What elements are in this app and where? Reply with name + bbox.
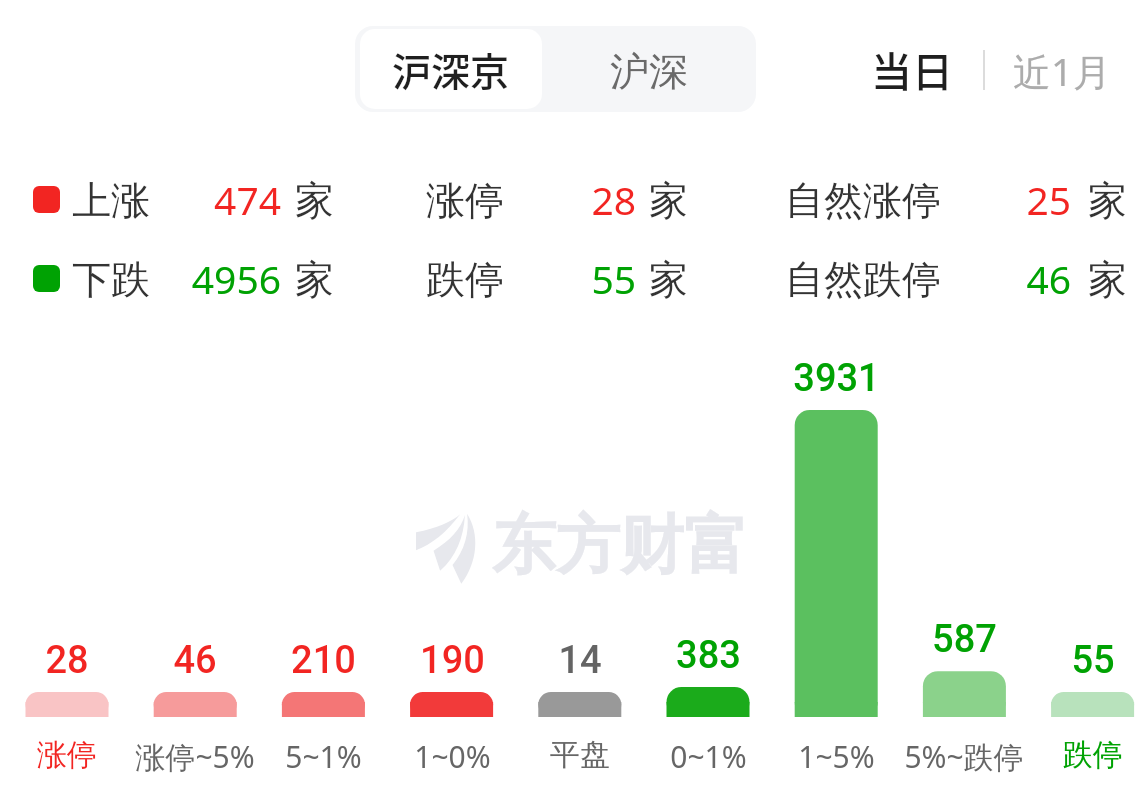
staticText: 家 — [295, 255, 334, 304]
staticText: 下跌 — [72, 255, 150, 304]
staticText: 3931 — [793, 356, 880, 401]
staticText: 383 — [676, 633, 741, 678]
staticText: 自然涨停 — [785, 176, 941, 225]
staticText: 210 — [291, 638, 356, 683]
button[interactable]: 沪深 — [542, 28, 756, 112]
staticText: 沪深 — [610, 47, 688, 96]
staticText: 0~1% — [670, 736, 747, 777]
staticText: 自然跌停 — [785, 255, 941, 304]
staticText: 28 — [476, 173, 636, 226]
staticText: 587 — [932, 617, 997, 662]
button[interactable]: 0~1% 383 — [644, 631, 772, 775]
button[interactable]: 5%~跌停 587 — [900, 615, 1028, 775]
button[interactable]: 平盘 14 — [516, 636, 644, 775]
staticText: 当日 — [871, 39, 953, 97]
button[interactable]: 沪深京 — [360, 29, 542, 109]
button[interactable]: 5~1% 210 — [259, 636, 387, 775]
staticText: 46 — [173, 638, 217, 683]
staticText: 474 — [121, 173, 281, 226]
staticText: 平盘 — [550, 736, 610, 774]
staticText: 家 — [1088, 176, 1127, 225]
button[interactable]: 近1月 — [1003, 42, 1120, 100]
staticText: 家 — [649, 255, 688, 304]
staticText: 1~0% — [414, 736, 491, 777]
staticText: 5%~跌停 — [904, 736, 1024, 777]
staticText: 55 — [476, 252, 636, 305]
button[interactable]: 涨停 28 家 — [400, 167, 720, 225]
staticText: 家 — [295, 176, 334, 225]
staticText: 沪深京 — [392, 41, 510, 97]
staticText: 28 — [45, 638, 89, 683]
staticText: 14 — [558, 638, 602, 683]
staticText: 4956 — [121, 252, 281, 305]
staticText: 近1月 — [1013, 45, 1111, 97]
button[interactable]: 1~5% 3931 — [772, 354, 900, 775]
staticText: 46 — [911, 252, 1071, 305]
button[interactable]: 涨停 28 — [3, 636, 131, 775]
staticText: 跌停 — [1063, 736, 1123, 774]
staticText: 家 — [649, 176, 688, 225]
staticText: 25 — [911, 173, 1071, 226]
staticText: 上涨 — [72, 176, 150, 225]
other: 东方财富 logo — [412, 508, 485, 590]
staticText: 东方财富 — [492, 505, 748, 586]
button[interactable]: 自然跌停 46 家 — [760, 246, 1130, 304]
staticText: 家 — [1088, 255, 1127, 304]
button[interactable]: 上涨 474 家 — [20, 167, 380, 225]
staticText: 跌停 — [426, 255, 504, 304]
staticText: 涨停~5% — [135, 736, 255, 777]
staticText: 涨停 — [426, 176, 504, 225]
staticText: 1~5% — [798, 736, 875, 777]
staticText: 190 — [420, 638, 485, 683]
button[interactable]: 自然涨停 25 家 — [760, 167, 1130, 225]
button[interactable]: 涨停~5% 46 — [131, 636, 259, 775]
button[interactable]: 跌停 55 — [1029, 636, 1147, 775]
button[interactable]: 当日 — [862, 39, 962, 97]
button[interactable]: 跌停 55 家 — [400, 246, 720, 304]
staticText: 5~1% — [285, 736, 362, 777]
button[interactable]: 1~0% 190 — [387, 636, 515, 775]
button[interactable]: 下跌 4956 家 — [20, 246, 380, 304]
staticText: 涨停 — [37, 736, 97, 774]
staticText: 55 — [1071, 638, 1115, 683]
